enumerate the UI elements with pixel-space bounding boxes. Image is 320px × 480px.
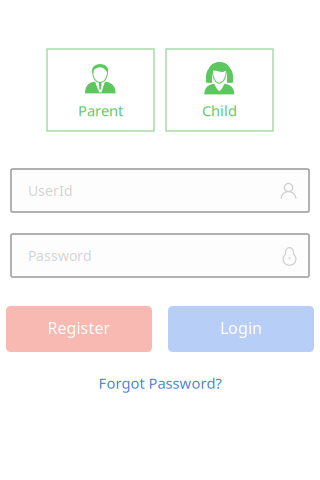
button[interactable]: Child <box>166 49 273 131</box>
staticText: Password <box>28 246 92 265</box>
staticText: Forgot Password? <box>98 373 221 393</box>
staticText: Child <box>202 100 237 120</box>
staticText: Parent <box>78 100 123 120</box>
staticText: UserId <box>28 181 73 200</box>
button[interactable]: Login <box>168 306 314 352</box>
button[interactable]: Parent <box>47 49 154 131</box>
button[interactable]: Register <box>6 306 152 352</box>
button[interactable]: Forgot Password? <box>98 373 221 393</box>
staticText: Register <box>47 317 110 339</box>
staticText: Login <box>220 317 262 339</box>
